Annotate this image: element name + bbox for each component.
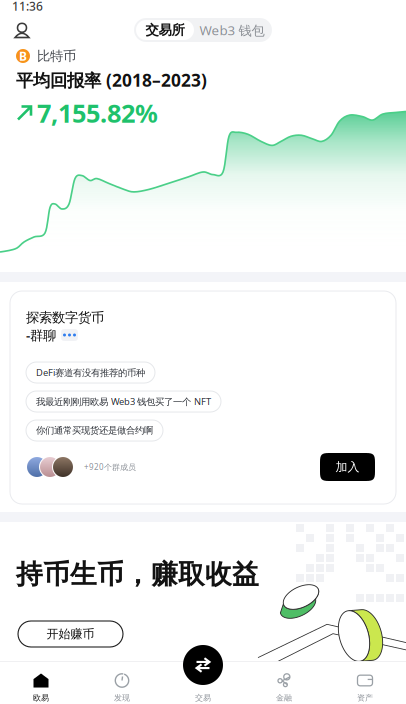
button[interactable]: 发现 xyxy=(81,661,162,704)
button[interactable]: 交易所 xyxy=(136,20,194,40)
button[interactable]: 加入 xyxy=(320,453,375,481)
staticText: 金融 xyxy=(276,693,292,703)
staticText: 发现 xyxy=(114,693,130,703)
staticText: +920个群成员 xyxy=(84,462,136,472)
staticText: 你们通常买现货还是做合约啊 xyxy=(36,425,153,436)
button[interactable]: 交易 xyxy=(162,661,243,704)
staticText: 开始赚币 xyxy=(46,627,94,641)
button[interactable]: 资产 xyxy=(324,661,405,704)
staticText: Web3 钱包 xyxy=(199,21,264,39)
button[interactable]: Account xyxy=(8,14,36,46)
staticText: 交易所 xyxy=(145,22,184,38)
button[interactable]: 交易 xyxy=(183,645,223,685)
staticText: 交易 xyxy=(195,693,211,703)
staticText: 11:36 xyxy=(12,0,43,14)
staticText: B xyxy=(19,48,27,64)
button[interactable]: 开始赚币 xyxy=(18,621,123,647)
staticText: 探索数字货币 xyxy=(26,309,104,326)
button[interactable]: 金融 xyxy=(243,661,324,704)
staticText: 持币生币，赚取收益 xyxy=(16,558,259,591)
staticText: 欧易 xyxy=(33,693,49,703)
staticText: 资产 xyxy=(357,693,373,703)
staticText: 我最近刚刚用欧易 Web3 钱包买了一个 NFT xyxy=(36,395,211,408)
staticText: DeFi赛道有没有推荐的币种 xyxy=(36,366,145,379)
staticText: 加入 xyxy=(335,460,359,474)
button[interactable]: Web3 钱包 xyxy=(194,20,270,40)
button[interactable]: 欧易 xyxy=(0,661,81,704)
staticText: 平均回报率 (2018–2023) xyxy=(16,68,207,91)
staticText: 比特币 xyxy=(37,48,76,64)
staticText: 7,155.82% xyxy=(37,96,158,130)
staticText: -群聊 xyxy=(26,326,56,344)
